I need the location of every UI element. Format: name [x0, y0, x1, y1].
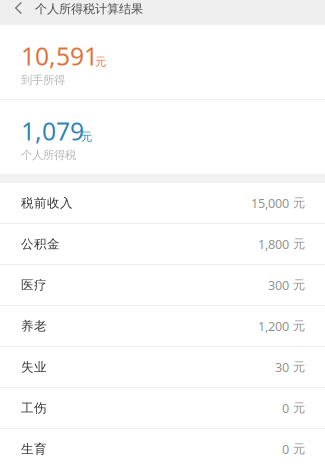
staticText: 养老	[21, 318, 47, 334]
staticText: 10,591	[21, 39, 98, 73]
staticText: 元	[289, 277, 305, 293]
staticText: 医疗	[21, 277, 47, 293]
button[interactable]: 税前收入	[0, 183, 325, 224]
button[interactable]: 工伤	[0, 388, 325, 429]
staticText: 失业	[21, 359, 47, 375]
staticText: 元	[289, 441, 305, 457]
staticText: 0	[282, 440, 289, 458]
staticText: 30	[275, 358, 289, 376]
staticText: 公积金	[21, 236, 60, 252]
staticText: 0	[282, 399, 289, 417]
staticText: 1,800	[258, 235, 289, 253]
button[interactable]: 失业	[0, 347, 325, 388]
staticText: 个人所得税计算结果	[35, 1, 143, 17]
staticText: 元	[81, 130, 92, 144]
staticText: 1,079	[21, 114, 84, 148]
staticText: 1,200	[258, 317, 289, 335]
staticText: 税前收入	[21, 195, 73, 211]
staticText: 到手所得	[21, 73, 65, 87]
staticText: 生育	[21, 441, 47, 457]
staticText: 300	[268, 276, 289, 294]
button[interactable]: 养老	[0, 306, 325, 347]
staticText: 元	[289, 400, 305, 416]
staticText: 元	[289, 318, 305, 334]
staticText: 元	[289, 236, 305, 252]
staticText: 工伤	[21, 400, 47, 416]
staticText: 元	[289, 195, 305, 211]
staticText: 15,000	[251, 194, 289, 212]
button[interactable]: 公积金	[0, 224, 325, 265]
button[interactable]: Back	[0, 0, 35, 18]
button[interactable]: 医疗	[0, 265, 325, 306]
staticText: 元	[95, 55, 106, 69]
staticText: 个人所得税	[21, 148, 76, 162]
button[interactable]: 生育	[0, 429, 325, 467]
staticText: 元	[289, 359, 305, 375]
